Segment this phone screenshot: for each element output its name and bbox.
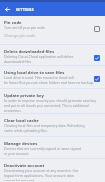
staticText: Delete downloaded files [4, 49, 55, 55]
staticText: cache while uploading files. [4, 128, 48, 133]
staticText: protection. [4, 108, 22, 112]
staticText: SETTINGS [16, 7, 34, 11]
button[interactable]: Delete downloaded files [0, 45, 105, 65]
staticText: Deleting Cloud-Cloud application will de… [4, 54, 74, 59]
staticText: Update private key [4, 93, 44, 99]
button[interactable]: Manage devices [0, 137, 105, 158]
staticText: be faster. But you can share folders and… [4, 80, 94, 85]
staticText: logout form applications. Your account d… [4, 173, 74, 178]
button[interactable]: Deactivate account [0, 159, 105, 182]
staticText: Pin code [4, 20, 22, 26]
button[interactable]: Enabled [91, 52, 103, 64]
button[interactable]: Pin code [0, 16, 105, 44]
button[interactable]: Disabled [91, 23, 103, 35]
staticText: downloaded files [4, 59, 32, 64]
staticText: Local drive is used. Files moved to clou… [4, 75, 74, 80]
staticText: Clear local cache [4, 118, 39, 124]
staticText: Devices that are currently signed or wer… [4, 146, 81, 151]
staticText: Deactivating your account at any moment.… [4, 168, 79, 173]
staticText: In order to improve security you should … [4, 98, 96, 103]
staticText: and put in all clouds you connected. Thi… [4, 103, 89, 108]
staticText: Change pin code [4, 33, 36, 38]
staticText: in your account [4, 151, 29, 156]
button[interactable]: Back [3, 5, 12, 14]
staticText: Turn on/off your pin code [4, 25, 45, 30]
button[interactable]: Update private key [0, 89, 105, 113]
button[interactable]: Enabled [91, 73, 103, 85]
staticText: Using local drive to save files [4, 70, 65, 76]
staticText: Clearing local files and temporary data.… [4, 123, 85, 128]
button[interactable]: Clear local cache [0, 114, 105, 136]
button[interactable]: Using local drive to save files [0, 66, 105, 88]
staticText: cannot be restored. [4, 178, 36, 181]
staticText: Manage devices [4, 141, 38, 147]
staticText: Deactivate account [4, 163, 45, 169]
